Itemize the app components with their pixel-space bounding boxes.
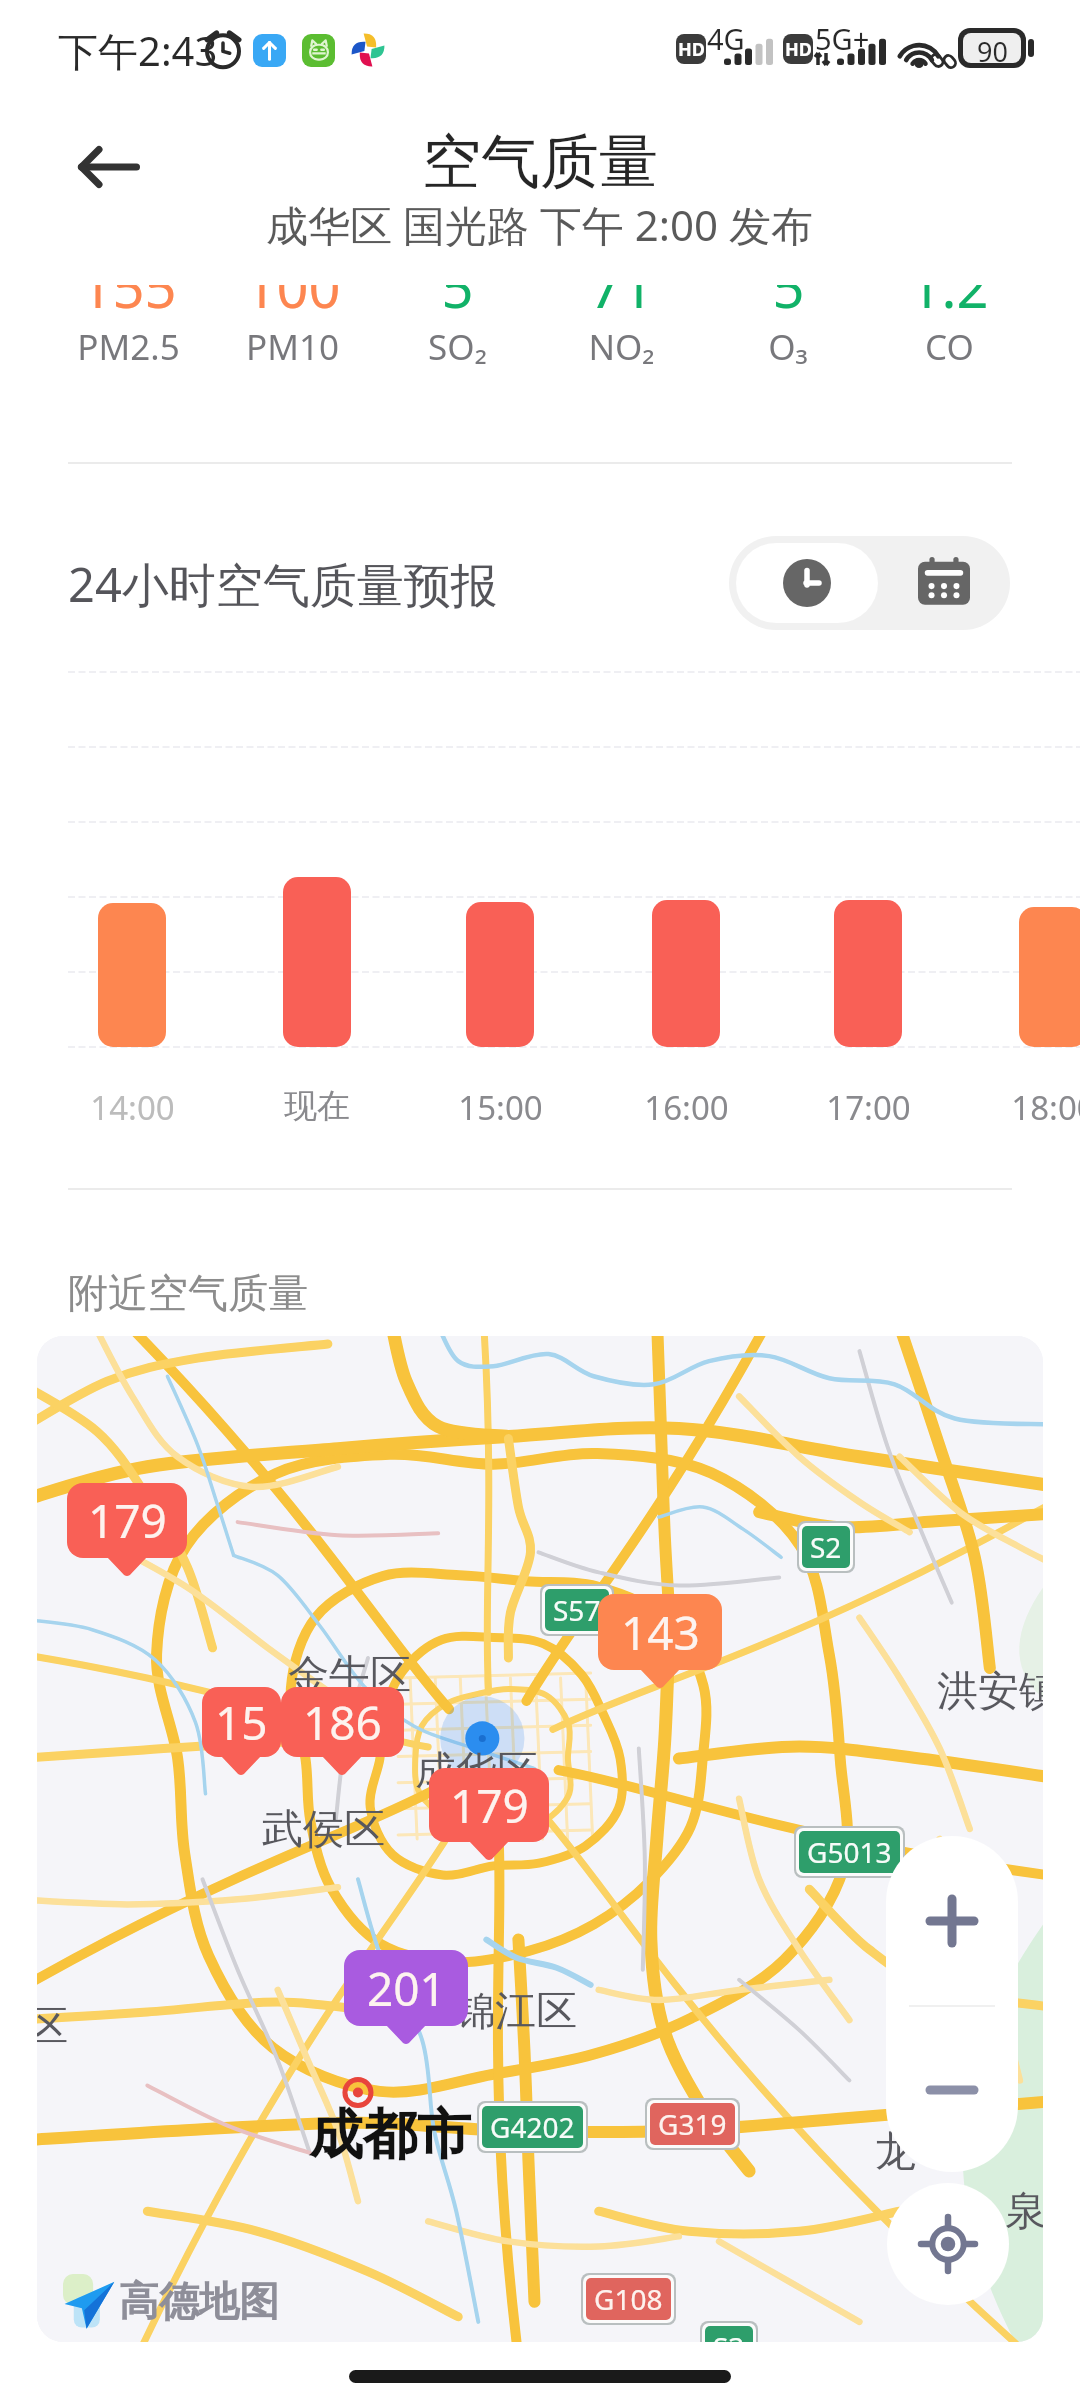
staticText: 155 xyxy=(80,248,177,324)
staticText: 179 xyxy=(450,1774,529,1837)
staticText: SO₂ xyxy=(428,323,487,371)
staticText: PM2.5 xyxy=(77,323,180,371)
staticText: S3 xyxy=(713,2328,745,2342)
staticText: 成都市 xyxy=(309,2101,471,2169)
staticText: G5013 xyxy=(807,1833,892,1871)
button[interactable]: Daily forecast xyxy=(885,543,1003,623)
staticText: 15 xyxy=(215,1691,268,1754)
staticText: 泉 xyxy=(1005,2186,1043,2238)
button[interactable]: Zoom out xyxy=(886,2007,1018,2172)
staticText: 15:00 xyxy=(458,1085,543,1130)
staticText: 14:00 xyxy=(90,1085,175,1130)
staticText: 100 xyxy=(244,248,341,324)
staticText: 186 xyxy=(303,1691,382,1754)
button[interactable]: Hourly forecast xyxy=(736,543,878,623)
button[interactable]: My location xyxy=(887,2183,1009,2305)
staticText: 下午2:43 xyxy=(58,23,218,78)
staticText: 5 xyxy=(772,248,805,324)
button[interactable]: Back xyxy=(54,112,164,222)
staticText: 1.2 xyxy=(909,248,989,324)
staticText: 18:00 xyxy=(1011,1085,1080,1130)
staticText: 4G xyxy=(707,19,745,58)
staticText: PM10 xyxy=(246,323,339,371)
button[interactable]: Nearby air quality map xyxy=(37,1336,1043,2342)
staticText: 洪安镇 xyxy=(937,1666,1043,1718)
staticText: 179 xyxy=(88,1489,167,1552)
staticText: 现在 xyxy=(284,1085,350,1127)
staticText: 附近空气质量 xyxy=(68,1268,308,1318)
staticText: G4202 xyxy=(490,2108,575,2146)
staticText: 17:00 xyxy=(826,1085,911,1130)
staticText: 成华区 国光路 下午 2:00 发布 xyxy=(266,196,814,253)
staticText: 武侯区 xyxy=(262,1804,385,1856)
staticText: G319 xyxy=(658,2105,727,2143)
staticText: 71 xyxy=(589,248,654,324)
staticText: 16:00 xyxy=(644,1085,729,1130)
staticText: O₃ xyxy=(768,323,808,371)
staticText: CO xyxy=(925,323,974,371)
staticText: 高德地图 xyxy=(119,2276,279,2326)
staticText: G108 xyxy=(594,2280,663,2318)
staticText: 143 xyxy=(621,1601,700,1664)
button[interactable]: Zoom in xyxy=(886,1836,1018,2005)
staticText: 5G+ xyxy=(815,19,870,58)
staticText: HD xyxy=(678,37,705,62)
staticText: 24小时空气质量预报 xyxy=(68,552,498,616)
staticText: HD xyxy=(785,37,812,62)
staticText: 龙 xyxy=(875,2126,916,2178)
staticText: 90 xyxy=(977,33,1008,63)
staticText: 区 xyxy=(37,2001,68,2053)
staticText: 空气质量 xyxy=(422,125,658,199)
staticText: S57 xyxy=(553,1591,601,1629)
staticText: 201 xyxy=(367,1957,446,2020)
staticText: 锦江区 xyxy=(454,1986,577,2038)
staticText: NO₂ xyxy=(588,323,655,371)
staticText: 成华区 xyxy=(415,1746,538,1798)
staticText: S2 xyxy=(810,1528,842,1566)
staticText: 金牛区 xyxy=(288,1650,411,1702)
staticText: 5 xyxy=(441,248,474,324)
